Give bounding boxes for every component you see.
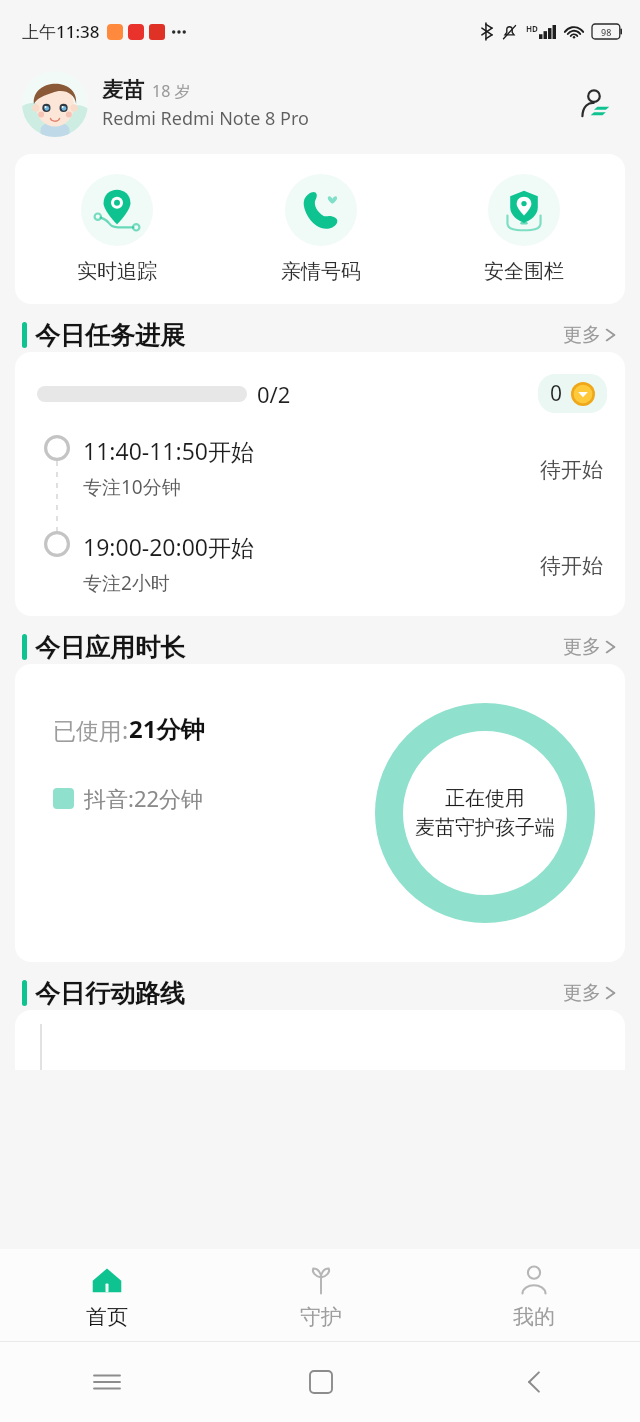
staticText: 待开始 [540, 553, 603, 579]
button[interactable]: 0 [538, 374, 607, 413]
button[interactable]: Recents [0, 1342, 214, 1422]
staticText: 更多 [563, 323, 601, 347]
staticText: 21分钟 [129, 712, 205, 745]
staticText: 已使用: [53, 714, 129, 745]
button[interactable]: 19:00-20:00开始 [83, 531, 540, 596]
staticText: 11:40-11:50开始 [83, 435, 254, 466]
button[interactable]: 首页 [0, 1249, 214, 1341]
button[interactable]: Home [214, 1342, 427, 1422]
staticText: 首页 [86, 1304, 128, 1330]
button[interactable]: 更多 [561, 319, 618, 351]
button[interactable]: 亲情号码 [219, 172, 422, 286]
staticText: 守护 [300, 1304, 342, 1330]
button[interactable]: 安全围栏 [422, 172, 625, 286]
staticText: 正在使用 [445, 786, 525, 811]
staticText: 安全围栏 [484, 259, 564, 284]
staticText: 今日任务进展 [35, 320, 185, 351]
staticText: 我的 [513, 1304, 555, 1330]
button[interactable]: 切换账号 [572, 81, 618, 127]
staticText: 今日应用时长 [35, 632, 185, 663]
staticText: 0 [550, 379, 563, 408]
staticText: 抖音:22分钟 [84, 783, 204, 813]
staticText: 上午11:38 [22, 20, 100, 43]
button[interactable]: Back [427, 1342, 640, 1422]
button[interactable]: 守护 [214, 1249, 427, 1341]
button[interactable]: 更多 [561, 977, 618, 1009]
staticText: 0/2 [257, 379, 291, 409]
button[interactable]: 实时追踪 [15, 172, 219, 286]
staticText: 专注2小时 [83, 570, 170, 596]
staticText: 待开始 [540, 457, 603, 483]
staticText: 19:00-20:00开始 [83, 531, 254, 562]
button[interactable]: 麦苗 [102, 77, 572, 131]
staticText: 98 [601, 26, 612, 38]
staticText: 实时追踪 [77, 259, 157, 284]
staticText: 更多 [563, 635, 601, 659]
button[interactable]: 更多 [561, 631, 618, 663]
staticText: HD [526, 23, 538, 34]
staticText: Redmi Redmi Note 8 Pro [102, 106, 309, 131]
staticText: 18 岁 [152, 80, 191, 102]
staticText: 专注10分钟 [83, 474, 181, 500]
staticText: 今日行动路线 [35, 978, 185, 1009]
staticText: 亲情号码 [281, 259, 361, 284]
staticText: 麦苗守护孩子端 [415, 815, 555, 840]
staticText: 更多 [563, 981, 601, 1005]
button[interactable]: 我的 [427, 1249, 640, 1341]
button[interactable]: 11:40-11:50开始 [83, 435, 540, 500]
staticText: 麦苗 [102, 77, 144, 103]
